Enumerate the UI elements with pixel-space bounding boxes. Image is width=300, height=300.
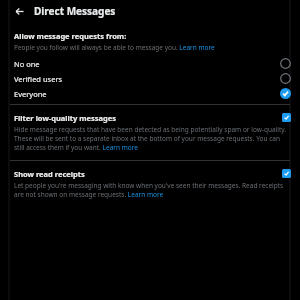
staticText: Direct Messages bbox=[34, 4, 116, 18]
button[interactable]: Back bbox=[12, 4, 26, 18]
staticText: Hide message requests that have been det… bbox=[14, 125, 288, 152]
staticText: People you follow will always be able to… bbox=[14, 43, 215, 52]
staticText: No one bbox=[14, 59, 40, 69]
button[interactable]: Everyone bbox=[0, 86, 300, 101]
staticText: Verified users bbox=[14, 74, 63, 84]
staticText: Let people you're messaging with know wh… bbox=[14, 181, 288, 199]
staticText: Show read receipts bbox=[14, 169, 276, 179]
button[interactable]: Show read receipts bbox=[0, 162, 300, 207]
staticText: Filter low-quality messages bbox=[14, 113, 276, 123]
button[interactable]: Verified users bbox=[0, 71, 300, 86]
staticText: Everyone bbox=[14, 89, 47, 99]
button[interactable]: No one bbox=[0, 56, 300, 71]
button[interactable]: Filter low-quality messages bbox=[0, 106, 300, 160]
staticText: Allow message requests from: bbox=[14, 31, 127, 41]
